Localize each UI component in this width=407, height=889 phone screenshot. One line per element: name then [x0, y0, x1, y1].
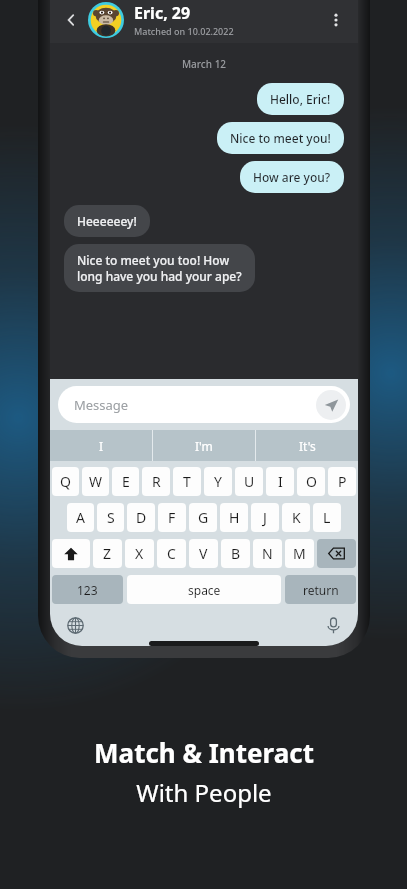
button[interactable]: More options — [322, 6, 350, 34]
staticText: W — [89, 472, 103, 491]
staticText: N — [262, 544, 273, 563]
staticText: Q — [60, 472, 71, 491]
button[interactable]: Y — [204, 467, 232, 496]
staticText: D — [136, 508, 147, 527]
staticText: P — [338, 472, 347, 491]
button[interactable]: L — [313, 503, 341, 532]
staticText: Z — [103, 544, 112, 563]
staticText: M — [293, 544, 306, 563]
staticText: E — [122, 472, 130, 491]
staticText: J — [263, 508, 267, 527]
button[interactable]: C — [157, 539, 186, 568]
staticText: V — [199, 544, 208, 563]
staticText: March 12 — [64, 57, 344, 71]
button[interactable]: return — [285, 575, 356, 604]
button[interactable]: N — [253, 539, 282, 568]
staticText: I'm — [195, 438, 213, 454]
staticText: Message — [74, 396, 316, 414]
button[interactable]: V — [189, 539, 218, 568]
staticText: S — [107, 508, 115, 527]
button[interactable]: space — [127, 575, 281, 604]
staticText: L — [323, 508, 331, 527]
button[interactable]: Nice to meet you too! How long have you … — [64, 244, 255, 292]
staticText: C — [167, 544, 176, 563]
staticText: return — [303, 582, 339, 598]
button[interactable]: O — [297, 467, 325, 496]
button[interactable]: Change keyboard — [62, 612, 88, 638]
button[interactable]: R — [142, 467, 170, 496]
button[interactable]: Shift — [52, 539, 90, 568]
button[interactable]: G — [189, 503, 217, 532]
staticText: space — [188, 582, 221, 598]
staticText: O — [306, 472, 317, 491]
button[interactable]: Message — [58, 386, 350, 423]
button[interactable]: Heeeeeey! — [64, 205, 150, 237]
button[interactable]: Voice input — [320, 612, 346, 638]
staticText: F — [168, 508, 176, 527]
staticText: B — [231, 544, 241, 563]
staticText: Nice to meet you! — [230, 130, 331, 146]
staticText: Hello, Eric! — [270, 91, 331, 107]
button[interactable]: A — [67, 503, 94, 532]
button[interactable]: W — [82, 467, 109, 496]
button[interactable]: 123 — [52, 575, 123, 604]
staticText: It's — [299, 438, 316, 454]
button[interactable]: Back — [58, 7, 84, 33]
staticText: A — [76, 508, 85, 527]
staticText: G — [198, 508, 209, 527]
staticText: With People — [136, 776, 272, 809]
staticText: Nice to meet you too! How long have you … — [77, 252, 242, 284]
staticText: Y — [214, 472, 222, 491]
button[interactable]: Q — [52, 467, 79, 496]
staticText: Heeeeeey! — [77, 213, 137, 229]
button[interactable]: X — [125, 539, 154, 568]
button[interactable]: How are you? — [240, 161, 344, 193]
button[interactable]: E — [112, 467, 139, 496]
button[interactable]: Z — [93, 539, 122, 568]
staticText: X — [135, 544, 144, 563]
button[interactable]: T — [173, 467, 201, 496]
staticText: Match & Interact — [94, 735, 314, 770]
button[interactable]: I'm — [153, 430, 255, 461]
staticText: Matched on 10.02.2022 — [134, 25, 234, 37]
staticText: R — [152, 472, 161, 491]
button[interactable]: S — [97, 503, 124, 532]
staticText: H — [229, 508, 240, 527]
button[interactable]: H — [220, 503, 248, 532]
button[interactable]: K — [282, 503, 310, 532]
button[interactable]: M — [285, 539, 314, 568]
button[interactable]: B — [221, 539, 250, 568]
staticText: Eric, 29 — [134, 2, 191, 24]
staticText: 123 — [77, 582, 98, 598]
button[interactable]: Send — [316, 390, 346, 420]
button[interactable]: D — [127, 503, 155, 532]
button[interactable]: F — [158, 503, 186, 532]
button[interactable]: I — [50, 430, 152, 461]
button[interactable]: It's — [256, 430, 358, 461]
button[interactable]: Backspace — [317, 539, 356, 568]
button[interactable]: U — [235, 467, 263, 496]
button[interactable]: Nice to meet you! — [217, 122, 344, 154]
staticText: I — [278, 472, 283, 491]
staticText: I — [99, 438, 104, 454]
staticText: K — [292, 508, 301, 527]
button[interactable]: J — [251, 503, 279, 532]
button[interactable]: Hello, Eric! — [257, 83, 344, 115]
staticText: T — [183, 472, 191, 491]
staticText: U — [244, 472, 255, 491]
staticText: How are you? — [253, 169, 331, 185]
button[interactable]: P — [328, 467, 356, 496]
button[interactable]: I — [266, 467, 294, 496]
